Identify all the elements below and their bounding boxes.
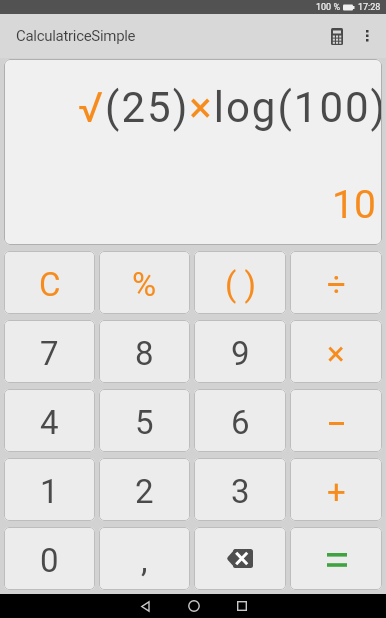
button[interactable]: 4 xyxy=(4,389,95,452)
button[interactable]: 6 xyxy=(194,389,286,452)
staticText: 4 xyxy=(40,403,59,442)
staticText: ÷ xyxy=(327,265,346,304)
staticText: 1 xyxy=(40,472,59,511)
button[interactable]: ÷ xyxy=(290,251,382,314)
button[interactable] xyxy=(290,527,382,590)
button[interactable] xyxy=(312,14,352,58)
staticText: √(25)×log(100) xyxy=(78,83,382,132)
button[interactable]: 2 xyxy=(99,458,190,521)
staticText: 7 xyxy=(40,334,59,373)
staticText: × xyxy=(327,334,345,373)
button[interactable] xyxy=(352,14,382,58)
staticText: C xyxy=(39,265,61,304)
button[interactable] xyxy=(218,594,266,618)
staticText: 100 % xyxy=(316,2,340,13)
staticText: 10 xyxy=(332,182,376,228)
staticText: 0 xyxy=(40,541,59,580)
button[interactable] xyxy=(169,594,218,618)
staticText: 5 xyxy=(135,403,154,442)
button[interactable] xyxy=(290,389,382,452)
staticText: % xyxy=(132,265,157,304)
staticText: 17:28 xyxy=(358,2,381,13)
staticText: 3 xyxy=(231,472,250,511)
button[interactable]: 0 xyxy=(4,527,95,590)
button[interactable]: 1 xyxy=(4,458,95,521)
staticText: 8 xyxy=(135,334,154,373)
button[interactable] xyxy=(194,527,286,590)
button[interactable]: 3 xyxy=(194,458,286,521)
staticText: CalculatriceSimple xyxy=(16,27,136,45)
button[interactable]: % xyxy=(99,251,190,314)
staticText: 9 xyxy=(231,334,250,373)
staticText: , xyxy=(141,541,148,580)
button[interactable]: 7 xyxy=(4,320,95,383)
staticText: 6 xyxy=(231,403,250,442)
button[interactable]: , xyxy=(99,527,190,590)
button[interactable]: ( ) xyxy=(194,251,286,314)
button[interactable]: 8 xyxy=(99,320,190,383)
staticText: + xyxy=(327,472,346,511)
staticText: 2 xyxy=(135,472,154,511)
button[interactable]: 9 xyxy=(194,320,286,383)
button[interactable]: × xyxy=(290,320,382,383)
staticText: ( ) xyxy=(225,265,256,304)
button[interactable]: 5 xyxy=(99,389,190,452)
button[interactable]: C xyxy=(4,251,95,314)
button[interactable] xyxy=(121,594,169,618)
button[interactable]: + xyxy=(290,458,382,521)
